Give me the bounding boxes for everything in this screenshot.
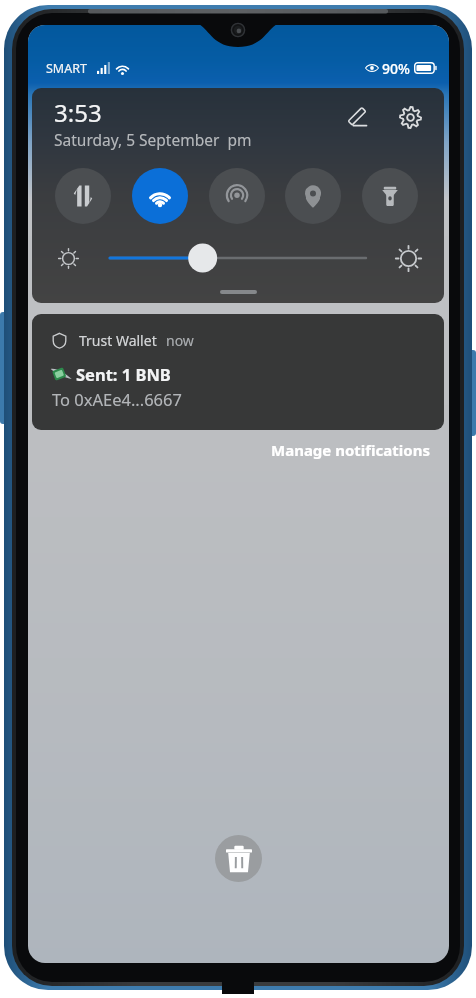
button[interactable]: Manage notifications (267, 437, 434, 463)
staticText: 3:53 (54, 96, 102, 129)
staticText: Sent: 1 BNB (76, 363, 171, 385)
button[interactable]: Location (285, 168, 341, 224)
staticText: Saturday, 5 September pm (54, 129, 252, 150)
button[interactable]: Settings (389, 96, 431, 138)
button[interactable]: Clear all notifications (215, 835, 262, 882)
button[interactable]: Flashlight (362, 168, 418, 224)
button[interactable]: Wi-Fi (132, 168, 188, 224)
button[interactable]: Brightness (110, 241, 366, 275)
staticText: 90% (382, 59, 410, 77)
staticText: SMART (46, 60, 87, 77)
button[interactable]: Hotspot (209, 168, 265, 224)
staticText: now (166, 331, 194, 350)
staticText: Manage notifications (271, 440, 430, 460)
staticText: To 0xAEe4...6667 (52, 388, 182, 410)
button[interactable]: Trust Wallet (32, 314, 444, 430)
button[interactable]: Mobile data (55, 168, 111, 224)
button[interactable]: Edit (336, 96, 378, 138)
staticText: Trust Wallet (79, 331, 157, 350)
